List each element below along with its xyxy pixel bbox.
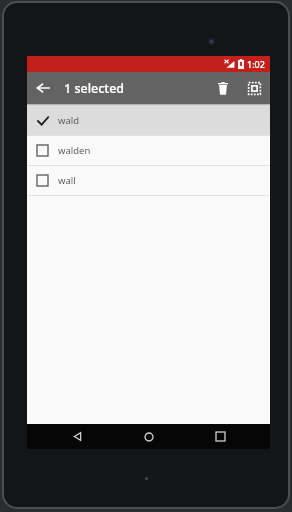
button[interactable]: Delete: [208, 72, 238, 104]
button[interactable]: Select all: [238, 72, 270, 104]
staticText: walden: [58, 144, 91, 157]
staticText: wall: [58, 174, 76, 187]
staticText: wald: [58, 114, 80, 127]
staticText: 1 selected: [64, 80, 125, 97]
button[interactable]: Recents: [199, 424, 241, 449]
button[interactable]: wald: [27, 106, 270, 135]
staticText: 1:02: [247, 58, 265, 70]
button[interactable]: Home: [128, 424, 170, 449]
button[interactable]: Back: [27, 72, 59, 104]
button[interactable]: Back: [56, 424, 98, 449]
button[interactable]: wall: [27, 166, 270, 195]
button[interactable]: walden: [27, 136, 270, 165]
